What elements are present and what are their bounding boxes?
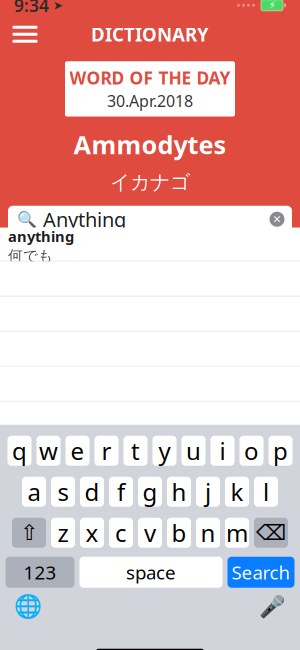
staticText: i	[219, 435, 225, 467]
staticText: WORD OF THE DAY	[69, 66, 230, 89]
button[interactable]: g	[138, 477, 162, 507]
button[interactable]: w	[36, 436, 60, 466]
button[interactable]: e	[65, 436, 89, 466]
staticText: ⌫	[256, 521, 286, 545]
button[interactable]: Menu	[3, 16, 47, 52]
staticText: p	[273, 435, 288, 467]
staticText: 🎤	[258, 594, 285, 619]
staticText: j	[205, 476, 211, 508]
staticText: ⚡︎	[268, 0, 275, 11]
button[interactable]: s	[51, 477, 75, 507]
button[interactable]: m	[225, 518, 249, 548]
button[interactable]: Change keyboard language	[10, 592, 46, 622]
button[interactable]: u	[181, 436, 205, 466]
staticText: f	[117, 476, 125, 508]
staticText: q	[12, 435, 27, 467]
button[interactable]: a	[22, 477, 46, 507]
staticText: b	[171, 517, 186, 549]
staticText: k	[230, 476, 243, 508]
button[interactable]: b	[167, 518, 191, 548]
staticText: anything	[8, 226, 74, 246]
staticText: 30.Apr.2018	[107, 90, 193, 111]
staticText: z	[57, 517, 68, 549]
staticText: w	[39, 435, 58, 467]
staticText: v	[144, 517, 156, 549]
staticText: Anything	[43, 206, 126, 233]
button[interactable]: i	[210, 436, 234, 466]
staticText: c	[115, 517, 127, 549]
button[interactable]: y	[152, 436, 176, 466]
staticText: y	[158, 435, 170, 467]
button[interactable]: l	[254, 477, 278, 507]
button[interactable]: anything	[0, 228, 300, 261]
staticText: t	[131, 435, 140, 467]
staticText: n	[200, 517, 215, 549]
button[interactable]: q	[7, 436, 31, 466]
staticText: r	[101, 435, 111, 467]
button[interactable]: Dictate	[254, 592, 290, 622]
staticText: ➤	[49, 0, 63, 12]
staticText: Search	[231, 560, 290, 585]
staticText: g	[142, 476, 157, 508]
staticText: u	[186, 435, 201, 467]
button[interactable]: j	[196, 477, 220, 507]
button[interactable]: Search	[227, 557, 294, 588]
staticText: 何でも	[8, 247, 53, 265]
staticText: 123	[23, 560, 56, 585]
button[interactable]: c	[109, 518, 133, 548]
staticText: o	[244, 435, 259, 467]
staticText: ✕	[272, 213, 281, 225]
button[interactable]: Shift	[12, 518, 46, 548]
button[interactable]: f	[109, 477, 133, 507]
button[interactable]: x	[80, 518, 104, 548]
button[interactable]: o	[239, 436, 263, 466]
button[interactable]: k	[225, 477, 249, 507]
button[interactable]: z	[51, 518, 75, 548]
staticText: 🔍	[17, 210, 37, 228]
button[interactable]: t	[123, 436, 147, 466]
button[interactable]: Clear search text	[265, 207, 289, 231]
staticText: ⇧	[20, 521, 38, 545]
staticText: a	[27, 476, 40, 508]
staticText: イカナゴ	[110, 170, 190, 195]
button[interactable]: p	[268, 436, 292, 466]
button[interactable]: h	[167, 477, 191, 507]
button[interactable]: space	[79, 557, 222, 588]
button[interactable]: r	[94, 436, 118, 466]
staticText: h	[171, 476, 186, 508]
staticText: space	[126, 560, 176, 585]
button[interactable]: n	[196, 518, 220, 548]
staticText: Ammodytes	[73, 127, 226, 161]
button[interactable]: Delete	[254, 518, 288, 548]
staticText: s	[57, 476, 68, 508]
staticText: l	[263, 476, 269, 508]
button[interactable]: d	[80, 477, 104, 507]
staticText: 9:34	[14, 0, 49, 17]
button[interactable]: 123	[5, 557, 74, 588]
staticText: DICTIONARY	[91, 22, 209, 47]
staticText: x	[85, 517, 98, 549]
staticText: m	[226, 517, 248, 549]
button[interactable]: v	[138, 518, 162, 548]
staticText: e	[70, 435, 84, 467]
staticText: d	[84, 476, 99, 508]
staticText: 🌐	[14, 594, 42, 620]
